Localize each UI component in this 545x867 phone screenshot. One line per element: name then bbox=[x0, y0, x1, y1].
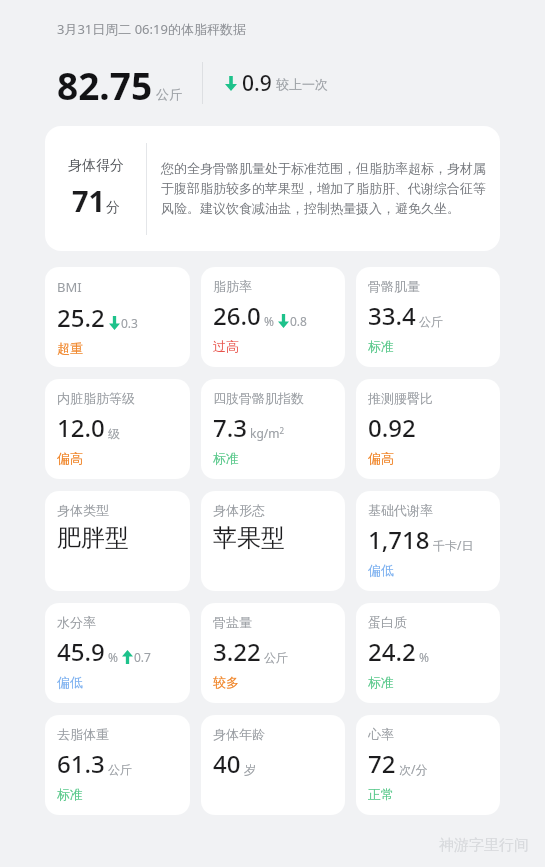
staticText: 偏低 bbox=[57, 674, 83, 690]
staticText: 身体得分 bbox=[68, 157, 124, 175]
staticText: 公斤 bbox=[156, 86, 182, 102]
button[interactable]: 身体年龄 bbox=[201, 715, 345, 815]
staticText: 骨骼肌量 bbox=[368, 278, 420, 294]
staticText: 超重 bbox=[57, 340, 83, 356]
button[interactable]: 脂肪率 bbox=[201, 267, 345, 367]
staticText: 身体形态 bbox=[213, 502, 265, 518]
staticText: 0.8 bbox=[290, 313, 307, 329]
staticText: 45.9 bbox=[57, 635, 105, 668]
staticText: 身体年龄 bbox=[213, 726, 265, 742]
button[interactable]: 身体类型 bbox=[45, 491, 190, 591]
button[interactable]: 骨骼肌量 bbox=[356, 267, 500, 367]
button[interactable]: 基础代谢率 bbox=[356, 491, 500, 591]
staticText: 千卡/日 bbox=[433, 537, 474, 553]
staticText: kg/m2 bbox=[250, 425, 285, 441]
staticText: 肥胖型 bbox=[57, 523, 129, 553]
staticText: 71 bbox=[72, 181, 106, 220]
staticText: 0.3 bbox=[121, 315, 138, 331]
staticText: 标准 bbox=[368, 338, 394, 354]
staticText: 内脏脂肪等级 bbox=[57, 390, 135, 406]
staticText: 苹果型 bbox=[213, 523, 285, 553]
staticText: 较上一次 bbox=[276, 76, 328, 92]
staticText: 3月31日周二 06:19的体脂秤数据 bbox=[57, 20, 246, 38]
staticText: 基础代谢率 bbox=[368, 502, 433, 518]
button[interactable]: 内脏脂肪等级 bbox=[45, 379, 190, 479]
staticText: 12.0 bbox=[57, 411, 105, 444]
staticText: 26.0 bbox=[213, 299, 261, 332]
staticText: 过高 bbox=[213, 338, 239, 354]
staticText: 1,718 bbox=[368, 523, 430, 556]
staticText: 身体类型 bbox=[57, 502, 109, 518]
staticText: % bbox=[264, 313, 274, 329]
staticText: 分 bbox=[106, 199, 120, 217]
staticText: 去脂体重 bbox=[57, 726, 109, 742]
staticText: 推测腰臀比 bbox=[368, 390, 433, 406]
button[interactable]: 骨盐量 bbox=[201, 603, 345, 703]
staticText: % bbox=[419, 649, 429, 665]
staticText: 脂肪率 bbox=[213, 278, 252, 294]
staticText: 次/分 bbox=[399, 761, 428, 777]
staticText: 您的全身骨骼肌量处于标准范围，但脂肪率超标，身材属于腹部脂肪较多的苹果型，增加了… bbox=[161, 160, 488, 217]
staticText: 61.3 bbox=[57, 747, 105, 780]
staticText: BMI bbox=[57, 278, 82, 296]
staticText: 偏低 bbox=[368, 562, 394, 578]
staticText: 公斤 bbox=[264, 650, 288, 665]
staticText: 级 bbox=[108, 426, 120, 441]
staticText: % bbox=[108, 649, 118, 665]
button[interactable]: 水分率 bbox=[45, 603, 190, 703]
button[interactable]: 推测腰臀比 bbox=[356, 379, 500, 479]
button[interactable]: 四肢骨骼肌指数 bbox=[201, 379, 345, 479]
button[interactable]: 蛋白质 bbox=[356, 603, 500, 703]
button[interactable]: 身体得分 bbox=[45, 126, 500, 251]
staticText: 心率 bbox=[368, 726, 394, 742]
staticText: 0.7 bbox=[134, 649, 151, 665]
staticText: 骨盐量 bbox=[213, 614, 252, 630]
staticText: 0.9 bbox=[242, 69, 272, 98]
staticText: 33.4 bbox=[368, 299, 416, 332]
staticText: 标准 bbox=[213, 450, 239, 466]
button[interactable]: 去脂体重 bbox=[45, 715, 190, 815]
staticText: 72 bbox=[368, 747, 396, 780]
staticText: 四肢骨骼肌指数 bbox=[213, 390, 304, 406]
staticText: 神游字里行间 bbox=[439, 836, 529, 855]
staticText: 较多 bbox=[213, 674, 239, 690]
staticText: 3.22 bbox=[213, 635, 261, 668]
staticText: 标准 bbox=[368, 674, 394, 690]
button[interactable]: 心率 bbox=[356, 715, 500, 815]
staticText: 24.2 bbox=[368, 635, 416, 668]
staticText: 偏高 bbox=[57, 450, 83, 466]
staticText: 25.2 bbox=[57, 301, 105, 334]
staticText: 蛋白质 bbox=[368, 614, 407, 630]
staticText: 40 bbox=[213, 747, 241, 780]
staticText: 正常 bbox=[368, 786, 394, 802]
staticText: 岁 bbox=[244, 762, 256, 777]
staticText: 偏高 bbox=[368, 450, 394, 466]
staticText: 0.92 bbox=[368, 411, 416, 444]
staticText: 7.3 bbox=[213, 411, 247, 444]
staticText: 公斤 bbox=[108, 762, 132, 777]
staticText: 标准 bbox=[57, 786, 83, 802]
button[interactable]: 身体形态 bbox=[201, 491, 345, 591]
staticText: 公斤 bbox=[419, 314, 443, 329]
button[interactable]: BMI bbox=[45, 267, 190, 367]
staticText: 水分率 bbox=[57, 614, 96, 630]
staticText: 82.75 bbox=[57, 60, 153, 106]
